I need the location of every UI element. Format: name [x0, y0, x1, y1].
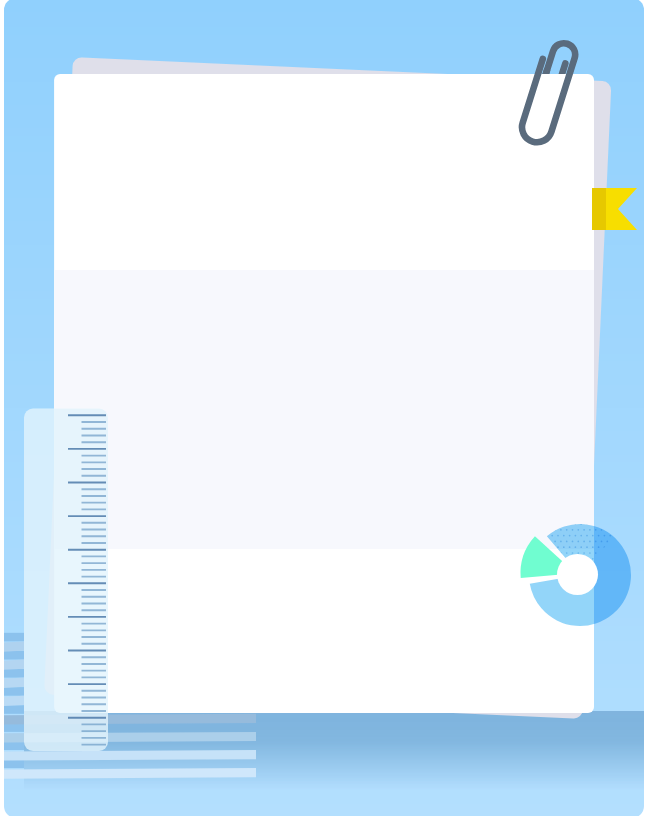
button[interactable]: Paper documents illustration	[0, 0, 651, 816]
